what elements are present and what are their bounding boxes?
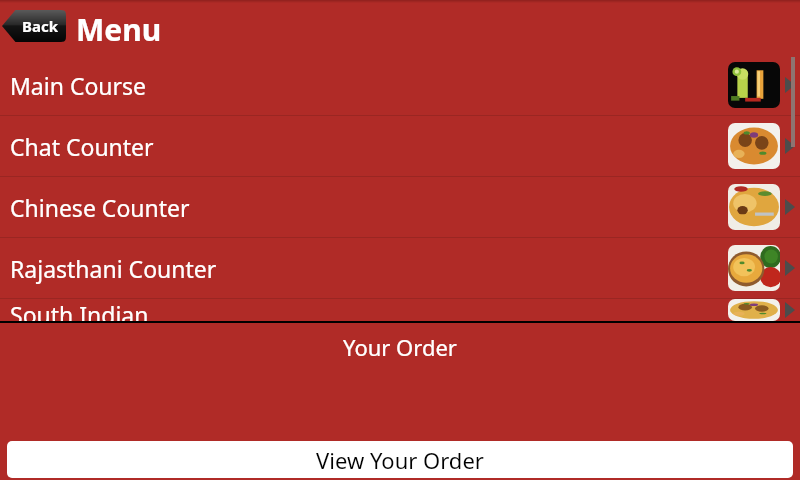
staticText: Your Order [343, 332, 457, 362]
staticText: Menu [76, 9, 162, 50]
staticText: View Your Order [316, 445, 484, 475]
staticText: Chinese Counter [10, 192, 728, 223]
staticText: Rajasthani Counter [10, 253, 728, 284]
staticText: Main Course [10, 70, 728, 101]
staticText: Chat Counter [10, 131, 728, 162]
button[interactable]: Back [2, 10, 66, 42]
button[interactable]: View Your Order [7, 441, 793, 478]
button[interactable]: Chat Counter [0, 116, 800, 176]
button[interactable]: Main Course [0, 55, 800, 115]
button[interactable]: Rajasthani Counter [0, 238, 800, 298]
staticText: South Indian [10, 299, 728, 321]
button[interactable]: South Indian [0, 299, 800, 321]
staticText: Back [22, 16, 59, 36]
button[interactable]: Chinese Counter [0, 177, 800, 237]
